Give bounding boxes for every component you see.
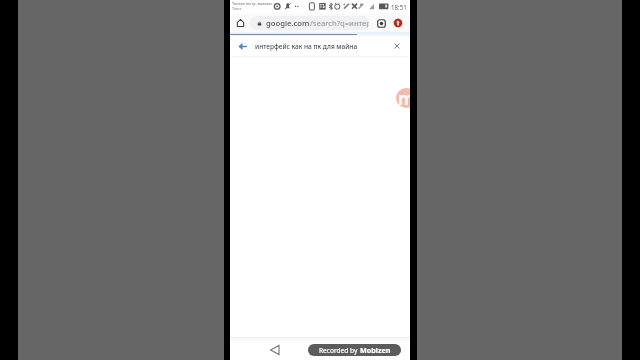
staticText: Recorded by: [319, 346, 360, 355]
staticText: интерфейс как на пк для майна: [255, 42, 358, 51]
staticText: m: [398, 88, 410, 107]
staticText: 18:51: [391, 3, 407, 11]
staticText: Mobizen: [360, 345, 391, 355]
button[interactable]: google.com: [250, 16, 369, 30]
staticText: Текст: [232, 6, 242, 11]
button[interactable]: Update available: [391, 16, 405, 30]
button[interactable]: Back: [268, 343, 282, 357]
button[interactable]: Search with camera: [374, 16, 388, 30]
button[interactable]: Back: [235, 39, 249, 53]
staticText: Только экстр. вызовы: [232, 1, 272, 6]
staticText: /search?q=интер: [310, 18, 369, 28]
button[interactable]: Home: [233, 16, 247, 30]
button[interactable]: Clear search: [390, 39, 404, 53]
staticText: google.com: [266, 18, 310, 28]
button[interactable]: Mobizen: [396, 88, 410, 108]
